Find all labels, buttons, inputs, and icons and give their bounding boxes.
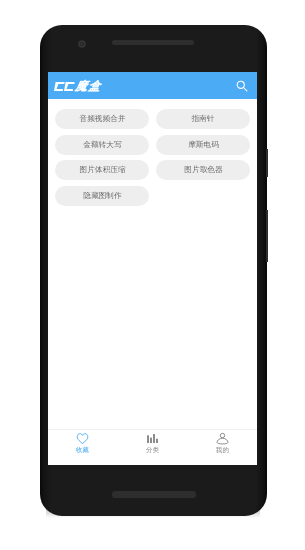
staticText: 音频视频合并 — [79, 114, 126, 124]
staticText: 收藏 — [76, 446, 89, 454]
staticText: 金额转大写 — [83, 140, 122, 150]
button[interactable]: 图片体积压缩 — [55, 160, 149, 180]
button[interactable]: 隐藏图制作 — [55, 186, 149, 206]
button[interactable]: 音频视频合并 — [55, 109, 149, 129]
staticText: 分类 — [146, 446, 159, 454]
staticText: 魔盒 — [75, 79, 102, 93]
staticText: 图片体积压缩 — [79, 165, 126, 175]
button[interactable]: 指南针 — [156, 109, 250, 129]
staticText: 摩斯电码 — [188, 140, 219, 150]
staticText: 隐藏图制作 — [83, 191, 122, 201]
button[interactable]: Search — [233, 77, 251, 95]
button[interactable]: 摩斯电码 — [156, 135, 250, 155]
staticText: 指南针 — [191, 114, 215, 124]
button[interactable]: 收藏 — [48, 430, 117, 465]
staticText: 图片取色器 — [184, 165, 223, 175]
button[interactable]: 图片取色器 — [156, 160, 250, 180]
staticText: 我的 — [216, 446, 229, 454]
button[interactable]: 金额转大写 — [55, 135, 149, 155]
button[interactable]: 我的 — [187, 430, 257, 465]
button[interactable]: 分类 — [117, 430, 187, 465]
